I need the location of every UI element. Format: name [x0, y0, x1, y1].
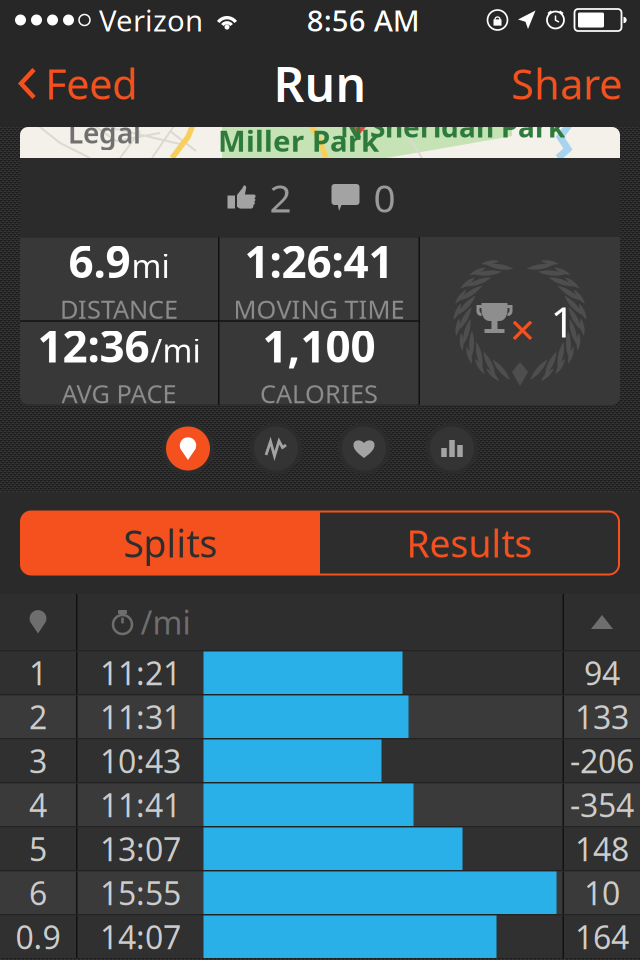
staticText: 13:07 — [100, 827, 181, 870]
staticText: 2 — [269, 172, 291, 223]
staticText: Share — [511, 56, 622, 111]
staticText: Miller Park — [218, 121, 379, 160]
button[interactable]: Share — [493, 52, 640, 114]
staticText: CALORIES — [260, 377, 378, 410]
staticText: 94 — [584, 651, 620, 694]
button[interactable]: Heart rate — [337, 421, 391, 475]
staticText: 164 — [575, 915, 629, 958]
staticText: 14:07 — [100, 915, 181, 958]
staticText: 148 — [575, 827, 629, 870]
staticText: 1,100 — [262, 316, 375, 375]
staticText: AVG PACE — [61, 377, 176, 410]
staticText: 133 — [575, 695, 629, 738]
staticText: 8:56 AM — [307, 0, 420, 39]
staticText: 2 — [29, 695, 47, 738]
staticText: Feed — [45, 56, 137, 111]
button[interactable]: Splits — [21, 511, 320, 574]
staticText: 0.9 — [15, 915, 60, 958]
staticText: DISTANCE — [60, 292, 178, 326]
button[interactable]: Results — [320, 511, 619, 574]
staticText: 5 — [29, 827, 47, 870]
staticText: 12:36 — [37, 316, 149, 375]
staticText: /mi — [150, 329, 200, 371]
staticText: -354 — [570, 783, 634, 826]
staticText: 11:41 — [100, 783, 181, 826]
staticText: 15:55 — [100, 871, 181, 914]
button[interactable]: Comments — [325, 166, 401, 228]
staticText: -206 — [570, 739, 634, 782]
staticText: /mi — [140, 601, 190, 643]
staticText: 1 — [29, 651, 47, 694]
staticText: 6 — [29, 871, 47, 914]
staticText: 6.9 — [68, 232, 130, 290]
staticText: 10 — [584, 871, 620, 914]
button[interactable]: Feed — [0, 52, 155, 114]
staticText: 0 — [373, 172, 395, 223]
staticText: ✕ — [508, 312, 536, 350]
button[interactable]: Charts — [425, 421, 479, 475]
staticText: 1 — [550, 293, 574, 349]
staticText: 3 — [29, 739, 47, 782]
button[interactable]: Kudos — [221, 166, 297, 228]
staticText: 11:31 — [100, 695, 181, 738]
staticText: mi — [131, 244, 169, 287]
staticText: Results — [406, 518, 532, 568]
staticText: 4 — [29, 783, 47, 826]
staticText: N Sheridan Park — [340, 108, 565, 145]
staticText: Run — [273, 52, 366, 115]
button[interactable]: Analysis — [249, 421, 303, 475]
staticText: Splits — [123, 518, 217, 568]
staticText: 11:21 — [100, 651, 181, 694]
button[interactable]: Map — [161, 421, 215, 475]
staticText: Legal — [68, 114, 141, 151]
staticText: 1:26:41 — [244, 232, 393, 290]
staticText: 10:43 — [100, 739, 181, 782]
staticText: MOVING TIME — [233, 292, 404, 326]
staticText: Verizon — [99, 0, 203, 39]
